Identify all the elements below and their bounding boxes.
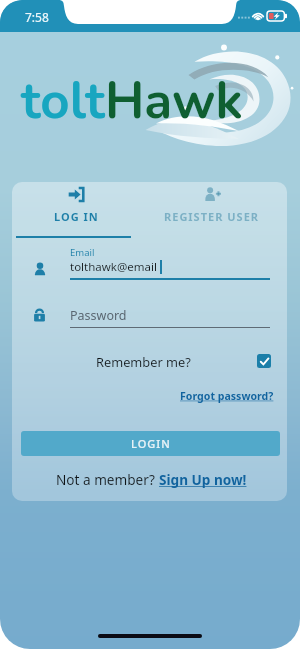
staticText: toltHawk <box>21 66 243 136</box>
staticText: Not a member? <box>56 470 159 489</box>
button[interactable]: Sign Up now! <box>159 470 247 489</box>
staticText: 7:58 <box>25 9 49 25</box>
button[interactable]: LOGIN <box>21 431 280 456</box>
staticText: Remember me? <box>96 353 191 370</box>
staticText: LOGIN <box>131 436 171 451</box>
staticText: Email <box>70 246 95 259</box>
staticText: Password <box>70 307 127 324</box>
button[interactable]: REGISTER USER <box>149 182 287 236</box>
staticText: LOG IN <box>54 209 99 224</box>
staticText: REGISTER USER <box>164 209 260 224</box>
button[interactable]: Forgot password? <box>180 389 274 403</box>
staticText: tolthawk@email <box>70 259 157 275</box>
staticText: Forgot password? <box>180 389 274 403</box>
button[interactable]: Remember me? <box>96 351 271 371</box>
button[interactable]: LOG IN <box>12 182 149 236</box>
